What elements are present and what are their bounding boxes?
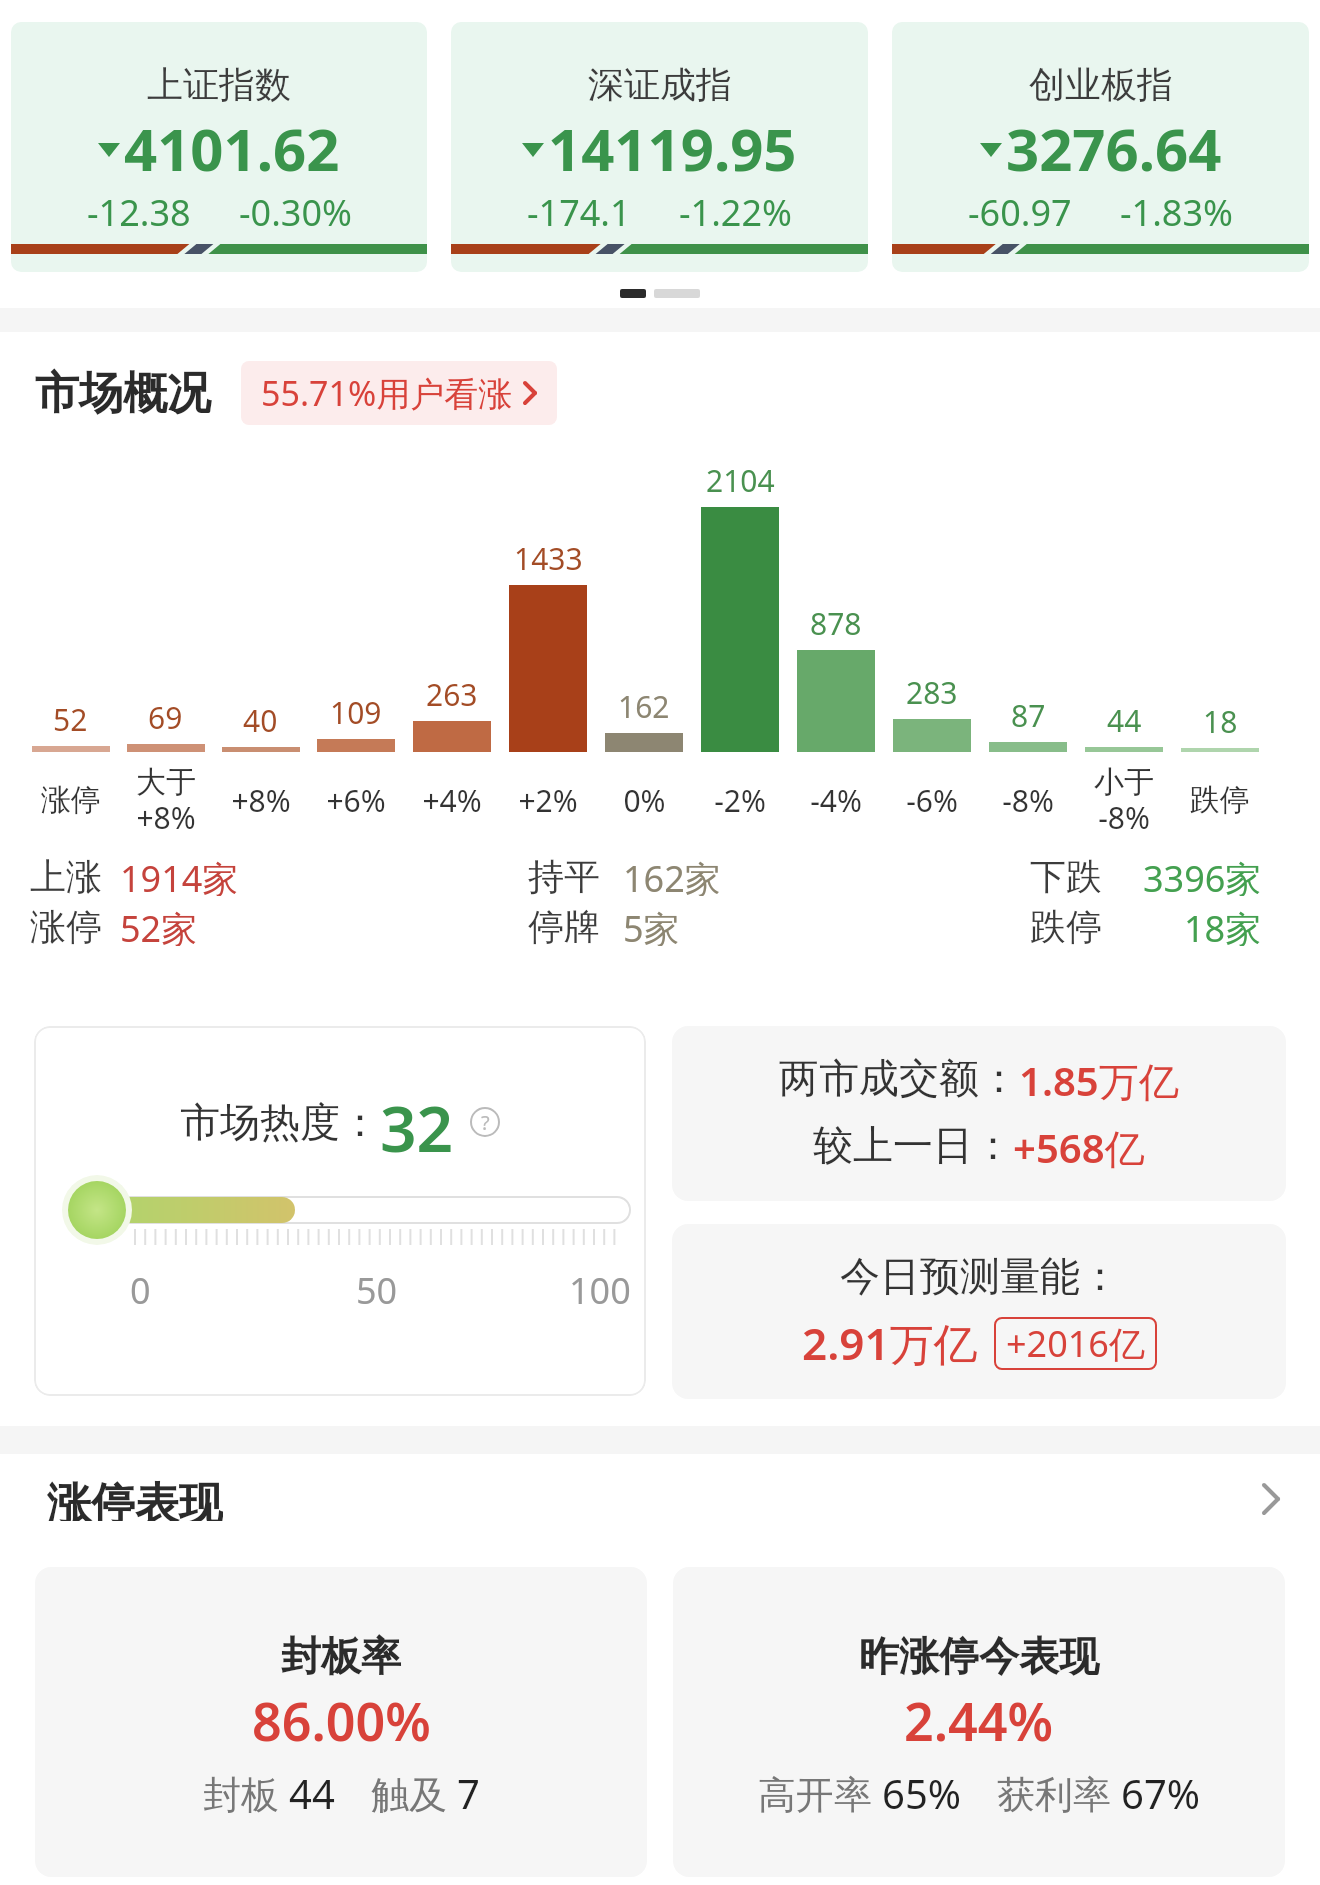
staticText: 86.00% (252, 1685, 431, 1756)
staticText: 1.85万亿 (1019, 1053, 1179, 1108)
button[interactable]: 昨涨停今表现 (673, 1567, 1285, 1877)
staticText: 创业板指 (1029, 62, 1173, 107)
staticText: 162 (618, 686, 670, 727)
staticText: 停牌 (528, 904, 600, 946)
staticText: -1.22% (679, 188, 792, 237)
staticText: 283 (906, 672, 958, 713)
staticText: 3276.64 (1006, 109, 1222, 188)
staticText: 7 (457, 1766, 480, 1820)
staticText: 封板 (203, 1767, 289, 1819)
button[interactable]: 今日预测量能： (672, 1224, 1286, 1399)
staticText: 40 (243, 700, 278, 741)
staticText: 263 (426, 674, 478, 715)
staticText: 小于 -8% (1094, 763, 1154, 838)
staticText: 较上一日： (813, 1120, 1013, 1170)
staticText: -8% (1002, 780, 1054, 821)
staticText: 下跌 (1030, 854, 1102, 896)
button[interactable]: 55.71%用户看涨 (241, 361, 557, 425)
staticText: 65% (882, 1766, 961, 1820)
staticText: 跌停 (1190, 781, 1250, 819)
staticText: 44 (1107, 700, 1142, 741)
button[interactable]: 涨停表现 (0, 1477, 1320, 1521)
button[interactable]: 两市成交额： (672, 1026, 1286, 1201)
staticText: 52 (53, 699, 88, 740)
staticText: -174.1 (527, 188, 631, 237)
staticText: -1.83% (1120, 188, 1233, 237)
staticText: 18 (1203, 701, 1238, 742)
staticText: 触及 (371, 1767, 457, 1819)
button[interactable]: 上证指数 (11, 22, 427, 272)
staticText: 跌停 (1030, 904, 1102, 946)
staticText: 0% (623, 780, 666, 821)
staticText: 持平 (528, 854, 600, 896)
staticText: 878 (810, 603, 862, 644)
staticText: 1433 (514, 538, 583, 579)
staticText: ? (481, 1109, 490, 1136)
staticText: 2.91万亿 (802, 1313, 978, 1373)
button[interactable]: 封板率 (35, 1567, 647, 1877)
staticText: 获利率 (997, 1767, 1121, 1819)
button[interactable]: 创业板指 (892, 22, 1309, 272)
staticText: 2104 (706, 460, 775, 501)
staticText: 涨停 (41, 781, 101, 819)
staticText: 109 (330, 692, 382, 733)
staticText: -2% (714, 780, 766, 821)
staticText: +2% (518, 780, 578, 821)
staticText: 封板率 (281, 1631, 401, 1681)
staticText: 4101.62 (124, 109, 340, 188)
staticText: -4% (810, 780, 862, 821)
staticText: 44 (289, 1766, 335, 1820)
staticText: 18家 (1184, 904, 1262, 946)
staticText: 市场热度： (180, 1097, 380, 1147)
staticText: 87 (1011, 695, 1046, 736)
staticText: 上证指数 (147, 62, 291, 107)
staticText: +8% (231, 780, 291, 821)
staticText: +4% (422, 780, 482, 821)
staticText: 50 (356, 1266, 398, 1315)
staticText: 1914家 (120, 854, 239, 896)
staticText: 5家 (623, 904, 680, 946)
staticText: -12.38 (87, 188, 191, 237)
staticText: 32 (380, 1084, 454, 1160)
button[interactable]: 市场热度： (34, 1026, 646, 1396)
staticText: -60.97 (968, 188, 1072, 237)
button[interactable]: 深证成指 (451, 22, 868, 272)
staticText: 大于 +8% (136, 763, 196, 838)
staticText: 涨停 (30, 904, 102, 946)
staticText: 67% (1121, 1766, 1200, 1820)
staticText: 高开率 (758, 1767, 882, 1819)
staticText: +6% (326, 780, 386, 821)
staticText: 2.44% (904, 1685, 1054, 1756)
staticText: 昨涨停今表现 (859, 1631, 1099, 1681)
staticText: 深证成指 (588, 62, 732, 107)
staticText: 市场概况 (35, 366, 211, 421)
staticText: 0 (130, 1266, 151, 1315)
staticText: 100 (569, 1266, 631, 1315)
staticText: 两市成交额： (779, 1053, 1019, 1103)
staticText: 14119.95 (548, 109, 797, 188)
staticText: 162家 (623, 854, 721, 896)
staticText: 55.71%用户看涨 (261, 370, 513, 416)
staticText: 上涨 (30, 854, 102, 896)
staticText: +2016亿 (1006, 1319, 1145, 1368)
staticText: +568亿 (1013, 1120, 1145, 1175)
staticText: 涨停表现 (47, 1477, 223, 1521)
staticText: 52家 (120, 904, 198, 946)
staticText: -0.30% (239, 188, 352, 237)
staticText: -6% (906, 780, 958, 821)
staticText: 69 (148, 697, 183, 738)
staticText: 今日预测量能： (840, 1251, 1120, 1301)
staticText: 3396家 (1143, 854, 1262, 896)
